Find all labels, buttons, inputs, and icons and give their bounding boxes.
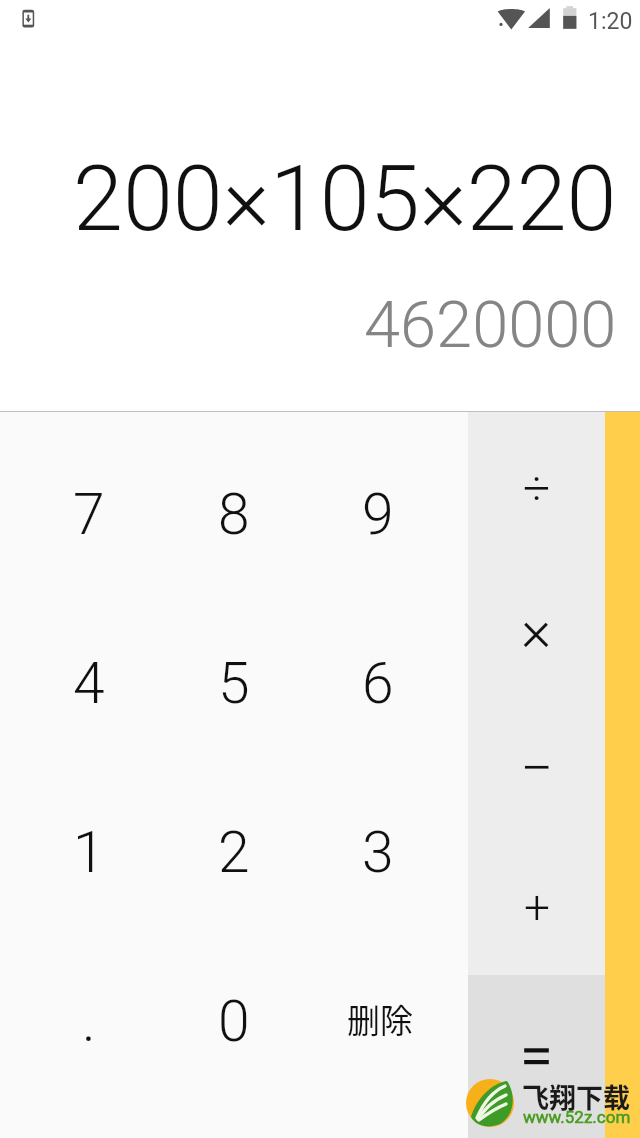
button[interactable]: + [468, 834, 605, 975]
button[interactable]: × [468, 552, 605, 693]
staticText: 9 [362, 481, 394, 548]
staticText: 7 [73, 481, 105, 548]
button[interactable]: 3 [312, 767, 468, 936]
button[interactable]: . [0, 936, 156, 1105]
staticText: www.52z.com [523, 1107, 631, 1127]
button[interactable]: 删除 [312, 936, 468, 1105]
staticText: − [520, 734, 554, 802]
button[interactable]: − [468, 693, 605, 834]
staticText: 5 [218, 650, 250, 717]
button[interactable]: 6 [312, 598, 468, 767]
staticText: 4620000 [364, 287, 617, 363]
staticText: 1:20 [588, 8, 633, 35]
button[interactable]: History [605, 412, 640, 1138]
button[interactable]: 5 [156, 598, 312, 767]
button[interactable]: ÷ [468, 412, 605, 552]
button[interactable]: 0 [156, 936, 312, 1105]
staticText: 4 [73, 650, 105, 717]
button[interactable]: Equals [468, 975, 605, 1138]
button[interactable]: 2 [156, 767, 312, 936]
staticText: 3 [362, 819, 394, 886]
button[interactable]: 7 [0, 429, 156, 598]
staticText: 2 [218, 819, 250, 886]
staticText: 飞翔下载 [522, 1077, 630, 1116]
staticText: 0 [218, 988, 250, 1055]
staticText: + [524, 880, 550, 934]
button[interactable]: 8 [156, 429, 312, 598]
staticText: 1 [73, 819, 105, 886]
staticText: 6 [362, 650, 394, 717]
staticText: 8 [218, 481, 250, 548]
staticText: 删除 [347, 995, 413, 1043]
staticText: 200×105×220 [73, 147, 617, 252]
staticText: ÷ [523, 460, 551, 516]
button[interactable]: 1 [0, 767, 156, 936]
staticText: . [82, 988, 96, 1055]
button[interactable]: 4 [0, 598, 156, 767]
staticText: × [521, 596, 552, 664]
button[interactable]: 9 [312, 429, 468, 598]
